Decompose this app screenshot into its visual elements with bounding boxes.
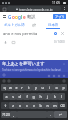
staticText: k (54, 94, 56, 99)
staticText: l (21, 14, 23, 20)
staticText: c (26, 103, 28, 108)
staticText: Toshiue ni onegaishimasu to kyokashite k… (2, 68, 61, 72)
staticText: ポルトガル語 (4, 23, 25, 27)
button[interactable]: n (44, 102, 51, 109)
button[interactable]: Keyboard settings (2, 73, 6, 77)
staticText: z (12, 103, 14, 108)
button[interactable]: a (3, 93, 9, 100)
button[interactable]: c (23, 102, 30, 109)
button[interactable]: ポルトガル語 (0, 21, 29, 29)
button[interactable]: m (51, 102, 58, 109)
staticText: q (3, 85, 6, 90)
button[interactable]: Theme (56, 73, 61, 78)
button[interactable]: x (16, 102, 23, 109)
staticText: l (61, 94, 62, 99)
staticText: translate.google.co.jp (19, 7, 53, 11)
staticText: x (19, 103, 21, 108)
staticText: 日本語 (48, 23, 59, 27)
button[interactable]: ?123 (1, 111, 10, 118)
button[interactable]: Clear (60, 31, 65, 36)
staticText: , (13, 112, 14, 117)
staticText: m (53, 103, 57, 108)
staticText: d (18, 94, 21, 99)
staticText: ano e nos permita (3, 31, 38, 36)
staticText: o (15, 14, 18, 20)
staticText: 翻訳 (27, 14, 36, 19)
button[interactable]: z (9, 102, 16, 109)
button[interactable]: Menu (2, 15, 6, 19)
staticText: s (12, 94, 14, 99)
button[interactable]: Keyboard options (62, 79, 66, 83)
staticText: h (39, 94, 42, 99)
button[interactable]: 年上あとを夢可います (2, 60, 66, 67)
button[interactable]: h (37, 93, 44, 100)
button[interactable]: d (16, 93, 23, 100)
staticText: o (55, 85, 58, 90)
staticText: y (35, 85, 37, 90)
button[interactable]: Language switch (2, 79, 6, 83)
staticText: v (33, 103, 35, 108)
button[interactable]: i (46, 84, 53, 91)
staticText: f (26, 94, 28, 99)
button[interactable]: p (60, 84, 67, 91)
staticText: i (49, 85, 50, 90)
button[interactable]: Translate (53, 31, 58, 36)
staticText: t (28, 85, 30, 90)
button[interactable]: f (23, 93, 30, 100)
staticText: G (8, 14, 12, 20)
button[interactable]: Tabs (2, 7, 6, 11)
button[interactable]: Expand suggestions (62, 62, 66, 66)
button[interactable]: 日本語 (38, 21, 68, 29)
button[interactable]: Mode switch (7, 79, 11, 83)
button[interactable]: Shift (1, 102, 9, 109)
staticText: o (12, 14, 15, 20)
button[interactable]: Swap languages (29, 21, 38, 29)
staticText: n (46, 103, 49, 108)
staticText: a (5, 94, 8, 99)
button[interactable]: translate.google.co.jp (7, 6, 61, 11)
staticText: ?123 (2, 112, 10, 117)
button[interactable]: l (58, 93, 65, 100)
button[interactable]: w (7, 84, 13, 91)
staticText: j (47, 94, 48, 99)
button[interactable]: j (44, 93, 51, 100)
staticText: ⇧ (4, 104, 7, 108)
button[interactable]: Emoji (46, 73, 51, 78)
button[interactable]: アプリ (53, 14, 66, 19)
button[interactable]: q (1, 84, 7, 91)
staticText: 年上あとを夢可います (2, 61, 45, 66)
staticText: ⌫ (60, 104, 65, 108)
button[interactable]: g (30, 93, 37, 100)
button[interactable]: s (9, 93, 16, 100)
staticText: g (18, 14, 21, 20)
button[interactable]: Clipboard (51, 73, 56, 78)
button[interactable]: e (13, 84, 19, 91)
button[interactable]: , (10, 111, 17, 118)
staticText: e (23, 14, 26, 20)
button[interactable]: o (53, 84, 60, 91)
staticText: ↵ (59, 113, 62, 117)
staticText: アプリ (55, 15, 65, 19)
button[interactable]: r (19, 84, 25, 91)
staticText: u (41, 85, 44, 90)
button[interactable]: Enter (54, 111, 67, 118)
button[interactable]: Voice input (3, 40, 8, 45)
staticText: g (32, 94, 35, 99)
button[interactable]: b (37, 102, 44, 109)
button[interactable]: . (47, 111, 54, 118)
staticText: . (50, 112, 51, 117)
button[interactable]: t (25, 84, 32, 91)
button[interactable]: k (51, 93, 58, 100)
button[interactable]: Share (61, 73, 66, 78)
button[interactable]: u (39, 84, 46, 91)
staticText: 0 / 5000 (54, 40, 65, 44)
button[interactable]: Backspace (58, 102, 67, 109)
button[interactable]: Handwriting input (11, 40, 16, 45)
staticText: b (39, 103, 42, 108)
button[interactable]: More options (62, 7, 66, 11)
staticText: r (21, 85, 23, 90)
staticText: e (15, 85, 18, 90)
button[interactable]: v (30, 102, 37, 109)
button[interactable]: y (32, 84, 39, 91)
